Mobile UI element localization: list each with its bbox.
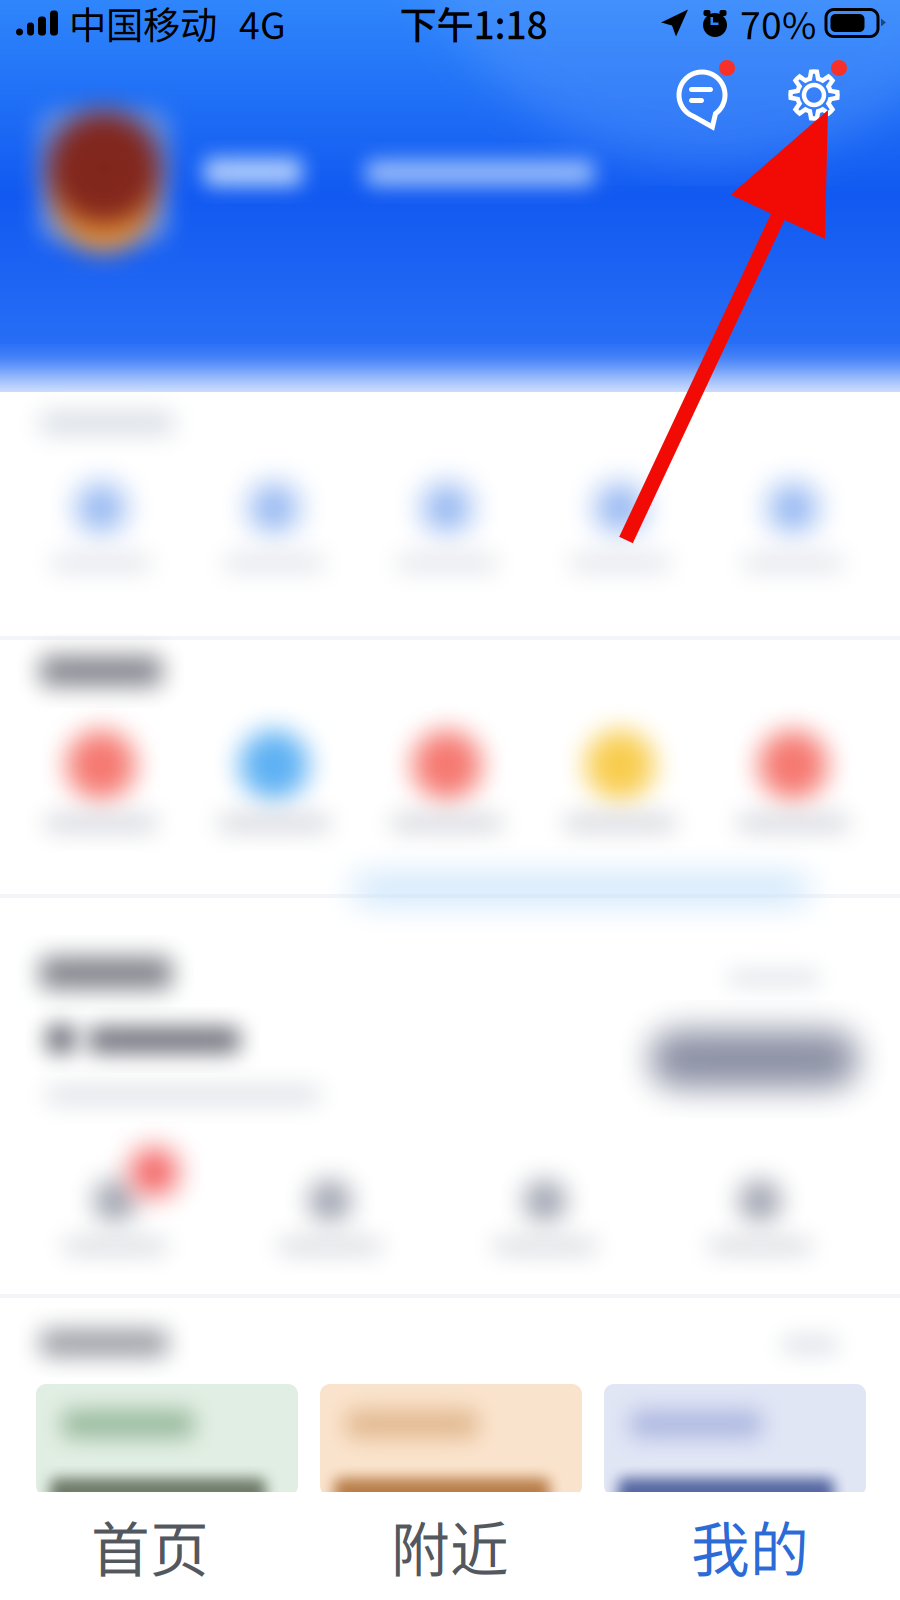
button[interactable]: Messages xyxy=(672,56,740,124)
button[interactable]: 首页 xyxy=(0,1492,300,1600)
staticText: 下午1:18 xyxy=(399,0,547,50)
staticText: 首页 xyxy=(91,1503,209,1588)
staticText: 4G xyxy=(239,0,286,50)
button[interactable]: 我的 xyxy=(600,1492,900,1600)
staticText: 我的 xyxy=(691,1503,809,1588)
staticText: 70% xyxy=(740,0,816,50)
button[interactable]: Settings xyxy=(784,56,852,124)
button[interactable]: 附近 xyxy=(300,1492,600,1600)
staticText: 附近 xyxy=(391,1503,509,1588)
staticText: 中国移动 xyxy=(69,0,217,50)
